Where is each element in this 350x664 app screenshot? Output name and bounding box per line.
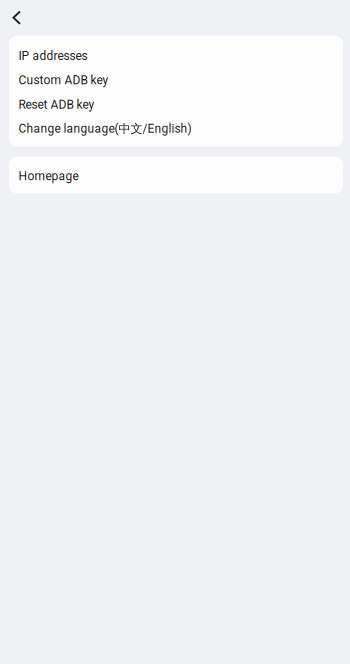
button[interactable]: Reset ADB key — [9, 91, 343, 115]
staticText: IP addresses — [18, 49, 87, 63]
staticText: Custom ADB key — [18, 73, 108, 87]
button[interactable]: Back — [0, 0, 34, 35]
button[interactable]: Homepage — [9, 163, 343, 187]
staticText: Reset ADB key — [18, 97, 94, 112]
staticText: Homepage — [18, 169, 78, 183]
button[interactable]: Custom ADB key — [9, 67, 343, 91]
button[interactable]: Change language(中文/English) — [9, 115, 343, 140]
staticText: Change language(中文/English) — [18, 121, 191, 136]
button[interactable]: IP addresses — [9, 42, 343, 67]
